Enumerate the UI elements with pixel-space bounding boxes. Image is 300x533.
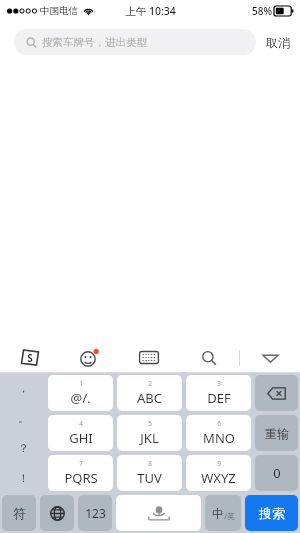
button[interactable]: 9: [186, 455, 251, 491]
staticText: 搜索: [259, 505, 285, 521]
button[interactable]: 中: [205, 495, 241, 531]
staticText: /英: [224, 511, 235, 521]
staticText: @/.: [70, 389, 91, 407]
staticText: 上午 10:34: [125, 4, 176, 18]
button[interactable]: Hide keyboard: [240, 342, 300, 373]
button[interactable]: 1: [48, 375, 113, 411]
staticText: GHI: [69, 429, 93, 447]
button[interactable]: 。: [0, 403, 46, 433]
staticText: S: [27, 351, 33, 365]
staticText: 3: [217, 379, 221, 388]
staticText: 4: [79, 419, 83, 428]
button[interactable]: Keyboard layout: [119, 342, 179, 373]
button[interactable]: 123: [78, 495, 112, 531]
staticText: 重输: [265, 426, 289, 441]
staticText: ？: [18, 441, 29, 455]
staticText: 搜索车牌号，进出类型: [42, 36, 147, 49]
button[interactable]: 5: [117, 415, 182, 451]
staticText: 取消: [266, 35, 290, 50]
staticText: 5: [148, 419, 152, 428]
staticText: 6: [217, 419, 221, 428]
staticText: JKL: [140, 429, 159, 447]
button[interactable]: 0: [255, 455, 298, 491]
button[interactable]: 2: [117, 375, 182, 411]
button[interactable]: 符: [2, 495, 36, 531]
button[interactable]: Backspace: [255, 375, 298, 411]
staticText: 符: [13, 505, 26, 521]
staticText: ！: [18, 471, 29, 485]
staticText: ABC: [137, 389, 162, 407]
button[interactable]: 3: [186, 375, 251, 411]
staticText: 123: [85, 505, 106, 521]
staticText: 8: [148, 459, 152, 468]
staticText: MNO: [203, 429, 235, 447]
staticText: 2: [148, 379, 152, 388]
staticText: 1: [79, 379, 83, 388]
staticText: 。: [18, 411, 29, 425]
button[interactable]: 重输: [255, 415, 298, 451]
staticText: 7: [79, 459, 83, 468]
button[interactable]: ，: [0, 373, 46, 403]
button[interactable]: 取消: [266, 35, 290, 50]
button[interactable]: Search: [179, 342, 239, 373]
button[interactable]: 7: [48, 455, 113, 491]
staticText: TUV: [137, 469, 162, 487]
button[interactable]: 搜索车牌号，进出类型: [14, 29, 256, 55]
button[interactable]: Sogou input: [0, 342, 59, 373]
staticText: PQRS: [64, 469, 98, 487]
button[interactable]: ！: [0, 463, 46, 493]
button[interactable]: Space, voice input: [116, 495, 201, 531]
button[interactable]: Emoji: [59, 342, 119, 373]
staticText: 中国电信: [40, 5, 78, 17]
staticText: 中: [212, 506, 224, 521]
button[interactable]: 搜索: [245, 495, 298, 531]
button[interactable]: Switch language: [40, 495, 74, 531]
button[interactable]: 4: [48, 415, 113, 451]
staticText: 58%: [252, 4, 272, 18]
button[interactable]: ？: [0, 433, 46, 463]
staticText: ，: [18, 381, 29, 395]
staticText: 9: [217, 459, 221, 468]
staticText: 0: [273, 464, 281, 482]
button[interactable]: 8: [117, 455, 182, 491]
staticText: WXYZ: [201, 469, 236, 487]
staticText: DEF: [207, 389, 231, 407]
button[interactable]: 6: [186, 415, 251, 451]
